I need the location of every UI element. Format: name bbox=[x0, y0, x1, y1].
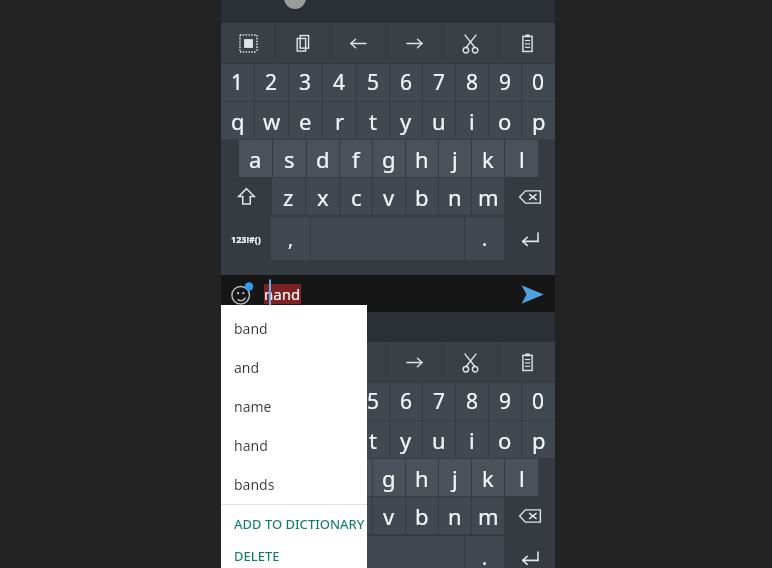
button[interactable]: r bbox=[323, 102, 356, 139]
button[interactable]: l bbox=[505, 140, 538, 177]
button[interactable]: v bbox=[373, 497, 405, 534]
button[interactable]: n bbox=[439, 178, 471, 215]
button[interactable]: bands bbox=[221, 465, 367, 504]
button[interactable]: o bbox=[489, 421, 521, 458]
button[interactable]: 7 bbox=[423, 64, 455, 101]
button[interactable]: 1 bbox=[221, 64, 254, 101]
button[interactable]: hand bbox=[221, 426, 367, 465]
button[interactable]: . bbox=[465, 536, 504, 568]
button[interactable]: , bbox=[271, 536, 310, 568]
button[interactable]: 2 bbox=[255, 64, 288, 101]
button[interactable]: and bbox=[221, 348, 367, 387]
button[interactable]: name bbox=[221, 387, 367, 426]
button[interactable]: Backspace bbox=[505, 178, 555, 215]
button[interactable]: Move left bbox=[331, 23, 386, 63]
button[interactable]: g bbox=[373, 459, 405, 496]
button[interactable]: 6 bbox=[390, 383, 422, 420]
button[interactable]: Backspace bbox=[505, 497, 555, 534]
button[interactable]: x bbox=[306, 178, 339, 215]
button[interactable]: w bbox=[255, 421, 288, 458]
button[interactable]: u bbox=[423, 421, 455, 458]
button[interactable]: b bbox=[406, 178, 438, 215]
button[interactable]: 1 bbox=[221, 383, 254, 420]
button[interactable]: 7 bbox=[423, 383, 455, 420]
button[interactable]: Enter bbox=[505, 536, 555, 568]
button[interactable]: Move left bbox=[331, 342, 386, 382]
button[interactable]: e bbox=[289, 102, 322, 139]
button[interactable]: o bbox=[489, 102, 521, 139]
button[interactable]: 123!#() bbox=[221, 536, 270, 568]
button[interactable]: h bbox=[406, 459, 438, 496]
button[interactable]: y bbox=[390, 102, 422, 139]
button[interactable]: j bbox=[439, 140, 471, 177]
button[interactable]: Paste bbox=[499, 23, 555, 63]
button[interactable]: z bbox=[272, 497, 305, 534]
button[interactable]: q bbox=[221, 102, 254, 139]
button[interactable]: b bbox=[406, 497, 438, 534]
button[interactable]: 9 bbox=[489, 64, 521, 101]
button[interactable]: Move right bbox=[387, 342, 442, 382]
button[interactable]: Send bbox=[517, 279, 547, 309]
button[interactable]: , bbox=[271, 217, 310, 260]
button[interactable]: . bbox=[465, 217, 504, 260]
button[interactable]: 123!#() bbox=[221, 217, 270, 260]
button[interactable]: d bbox=[307, 140, 339, 177]
button[interactable]: j bbox=[439, 459, 471, 496]
button[interactable]: t bbox=[357, 421, 389, 458]
button[interactable]: 6 bbox=[390, 64, 422, 101]
button[interactable]: w bbox=[255, 102, 288, 139]
button[interactable]: x bbox=[306, 497, 339, 534]
button[interactable]: q bbox=[221, 421, 254, 458]
button[interactable]: 0 bbox=[522, 64, 555, 101]
button[interactable]: k bbox=[472, 140, 504, 177]
button[interactable]: f bbox=[340, 459, 372, 496]
button[interactable]: p bbox=[522, 421, 555, 458]
button[interactable]: u bbox=[423, 102, 455, 139]
button[interactable]: s bbox=[273, 140, 306, 177]
button[interactable]: i bbox=[456, 102, 488, 139]
button[interactable]: nand bbox=[264, 275, 517, 312]
button[interactable]: i bbox=[456, 421, 488, 458]
button[interactable]: 8 bbox=[456, 64, 488, 101]
button[interactable]: g bbox=[373, 140, 405, 177]
button[interactable]: Cut bbox=[443, 23, 498, 63]
button[interactable]: 3 bbox=[289, 64, 322, 101]
button[interactable]: ADD TO DICTIONARY bbox=[221, 505, 367, 543]
button[interactable]: h bbox=[406, 140, 438, 177]
button[interactable]: y bbox=[390, 421, 422, 458]
button[interactable]: Shift bbox=[221, 497, 271, 534]
button[interactable]: s bbox=[273, 459, 306, 496]
button[interactable]: Select all bbox=[221, 342, 275, 382]
button[interactable]: Copy bbox=[276, 23, 330, 63]
button[interactable]: 0 bbox=[522, 383, 555, 420]
button[interactable]: Emoji bbox=[231, 283, 253, 305]
button[interactable]: z bbox=[272, 178, 305, 215]
button[interactable]: k bbox=[472, 459, 504, 496]
button[interactable]: Space bbox=[311, 536, 464, 568]
button[interactable]: m bbox=[472, 178, 504, 215]
button[interactable]: n bbox=[439, 497, 471, 534]
button[interactable]: f bbox=[340, 140, 372, 177]
button[interactable]: c bbox=[340, 178, 372, 215]
button[interactable]: 8 bbox=[456, 383, 488, 420]
button[interactable]: DELETE bbox=[221, 543, 367, 568]
button[interactable]: p bbox=[522, 102, 555, 139]
button[interactable]: band bbox=[221, 309, 367, 348]
button[interactable]: Shift bbox=[221, 178, 271, 215]
button[interactable]: t bbox=[357, 102, 389, 139]
button[interactable]: Select all bbox=[221, 23, 275, 63]
button[interactable]: c bbox=[340, 497, 372, 534]
button[interactable]: 5 bbox=[357, 383, 389, 420]
button[interactable]: 5 bbox=[357, 64, 389, 101]
button[interactable]: 4 bbox=[323, 64, 356, 101]
button[interactable]: Move right bbox=[387, 23, 442, 63]
button[interactable]: m bbox=[472, 497, 504, 534]
button[interactable]: 2 bbox=[255, 383, 288, 420]
button[interactable]: v bbox=[373, 178, 405, 215]
